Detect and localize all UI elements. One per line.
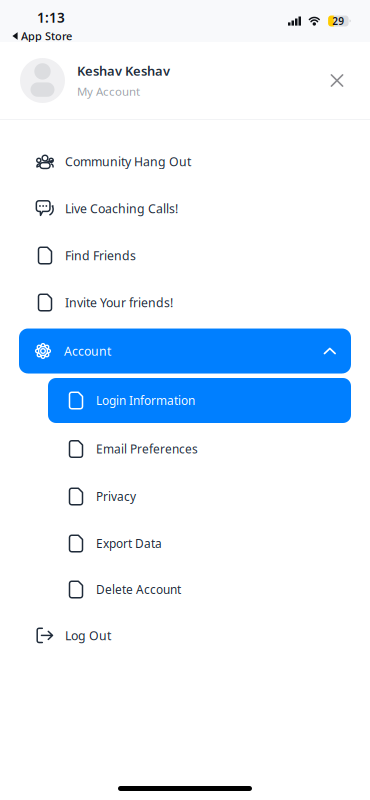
button[interactable]: Delete Account <box>0 567 370 612</box>
button[interactable]: Close <box>320 63 354 97</box>
staticText: Community Hang Out <box>65 153 191 170</box>
button[interactable]: Log Out <box>0 612 370 659</box>
button[interactable]: Email Preferences <box>0 425 370 473</box>
staticText: Export Data <box>96 535 162 552</box>
staticText: Account <box>64 343 111 359</box>
button[interactable]: Community Hang Out <box>0 138 370 185</box>
button[interactable]: Privacy <box>0 473 370 520</box>
button[interactable]: Invite Your friends! <box>0 279 370 326</box>
button[interactable]: Find Friends <box>0 232 370 279</box>
staticText: Login Information <box>96 392 195 409</box>
staticText: Email Preferences <box>96 441 198 457</box>
staticText: 29 <box>332 14 344 28</box>
staticText: App Store <box>21 29 72 43</box>
staticText: 1:13 <box>37 8 65 27</box>
staticText: Keshav Keshav <box>77 62 170 79</box>
staticText: Invite Your friends! <box>65 294 173 311</box>
staticText: Find Friends <box>65 247 136 264</box>
staticText: My Account <box>77 83 140 99</box>
staticText: Log Out <box>65 627 111 644</box>
button[interactable]: Export Data <box>0 520 370 567</box>
button[interactable]: App Store <box>0 30 370 42</box>
staticText: Live Coaching Calls! <box>65 200 178 217</box>
button[interactable]: Account <box>0 326 370 376</box>
button[interactable]: Login Information <box>0 376 370 425</box>
button[interactable]: Live Coaching Calls! <box>0 185 370 232</box>
staticText: Delete Account <box>96 581 181 598</box>
staticText: Privacy <box>96 488 136 505</box>
